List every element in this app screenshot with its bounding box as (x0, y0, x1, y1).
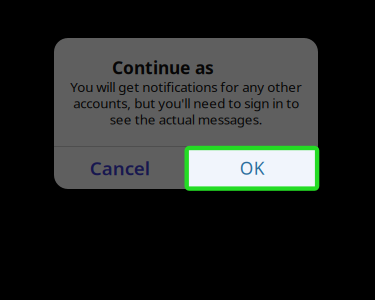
button[interactable]: Cancel (54, 147, 185, 189)
staticText: OK (240, 156, 265, 179)
staticText: You will get notifications for any other… (70, 78, 302, 128)
staticText: Continue as (112, 56, 214, 79)
staticText: Cancel (90, 156, 150, 180)
button[interactable]: OK (186, 147, 318, 189)
